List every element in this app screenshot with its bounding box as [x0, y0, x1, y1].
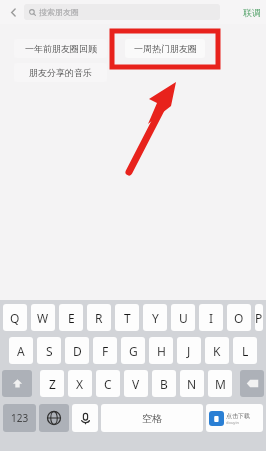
button[interactable]: 朋友分享的音乐 — [14, 63, 107, 82]
button[interactable]: O — [227, 304, 251, 331]
button[interactable]: J — [177, 337, 201, 364]
staticText: H — [157, 343, 166, 359]
staticText: F — [102, 343, 109, 359]
button[interactable]: U — [171, 304, 195, 331]
staticText: 123 — [11, 411, 29, 425]
button[interactable]: 搜索朋友圈 — [24, 4, 220, 20]
button[interactable]: 联调 — [243, 7, 261, 18]
button[interactable]: R — [87, 304, 111, 331]
staticText: K — [213, 343, 221, 359]
staticText: X — [76, 376, 84, 392]
button[interactable]: Back — [4, 3, 22, 21]
button[interactable]: X — [68, 370, 92, 397]
button[interactable]: C — [96, 370, 120, 397]
staticText: Z — [49, 376, 56, 392]
button[interactable]: 空格 — [101, 404, 203, 432]
button[interactable]: T — [115, 304, 139, 331]
staticText: Q — [10, 310, 20, 326]
staticText: V — [132, 376, 140, 392]
button[interactable]: N — [180, 370, 204, 397]
staticText: S — [46, 343, 53, 359]
staticText: T — [124, 310, 131, 326]
staticText: R — [95, 310, 103, 326]
staticText: P — [255, 310, 263, 326]
staticText: N — [187, 376, 197, 392]
staticText: douyin — [226, 420, 239, 425]
button[interactable]: 一年前朋友圈回顾 — [14, 39, 107, 58]
staticText: 一年前朋友圈回顾 — [25, 43, 97, 54]
button[interactable]: 点击下载 — [206, 404, 263, 432]
staticText: I — [209, 310, 214, 326]
staticText: 点击下载 — [226, 412, 250, 420]
button[interactable]: F — [93, 337, 117, 364]
staticText: J — [187, 343, 191, 359]
staticText: 空格 — [142, 412, 162, 425]
staticText: Y — [152, 310, 159, 326]
button[interactable]: H — [149, 337, 173, 364]
button[interactable]: E — [59, 304, 83, 331]
staticText: G — [129, 343, 138, 359]
staticText: O — [234, 310, 244, 326]
button[interactable]: L — [233, 337, 257, 364]
button[interactable]: B — [152, 370, 176, 397]
button[interactable]: 123 — [3, 404, 36, 432]
staticText: W — [37, 310, 49, 326]
button[interactable]: Y — [143, 304, 167, 331]
staticText: E — [68, 310, 75, 326]
button[interactable]: I — [199, 304, 223, 331]
button[interactable]: V — [124, 370, 148, 397]
staticText: L — [242, 343, 249, 359]
staticText: M — [215, 376, 226, 392]
staticText: 一周热门朋友圈 — [134, 43, 197, 54]
staticText: 朋友分享的音乐 — [29, 67, 92, 78]
button[interactable]: Z — [40, 370, 64, 397]
button[interactable] — [240, 370, 264, 397]
button[interactable]: M — [208, 370, 232, 397]
button[interactable]: Q — [3, 304, 27, 331]
button[interactable] — [2, 370, 32, 397]
button[interactable]: G — [121, 337, 145, 364]
button[interactable]: K — [205, 337, 229, 364]
button[interactable]: D — [65, 337, 89, 364]
button[interactable]: Voice input — [72, 404, 98, 432]
button[interactable]: A — [9, 337, 33, 364]
staticText: 联调 — [243, 7, 261, 18]
button[interactable]: Switch language — [39, 404, 69, 432]
staticText: B — [160, 376, 168, 392]
staticText: 搜索朋友圈 — [39, 7, 79, 17]
button[interactable]: P — [255, 304, 263, 331]
staticText: U — [179, 310, 188, 326]
button[interactable]: S — [37, 337, 61, 364]
button[interactable]: 一周热门朋友圈 — [125, 39, 205, 58]
staticText: A — [17, 343, 25, 359]
staticText: D — [73, 343, 82, 359]
staticText: C — [104, 376, 112, 392]
button[interactable]: W — [31, 304, 55, 331]
